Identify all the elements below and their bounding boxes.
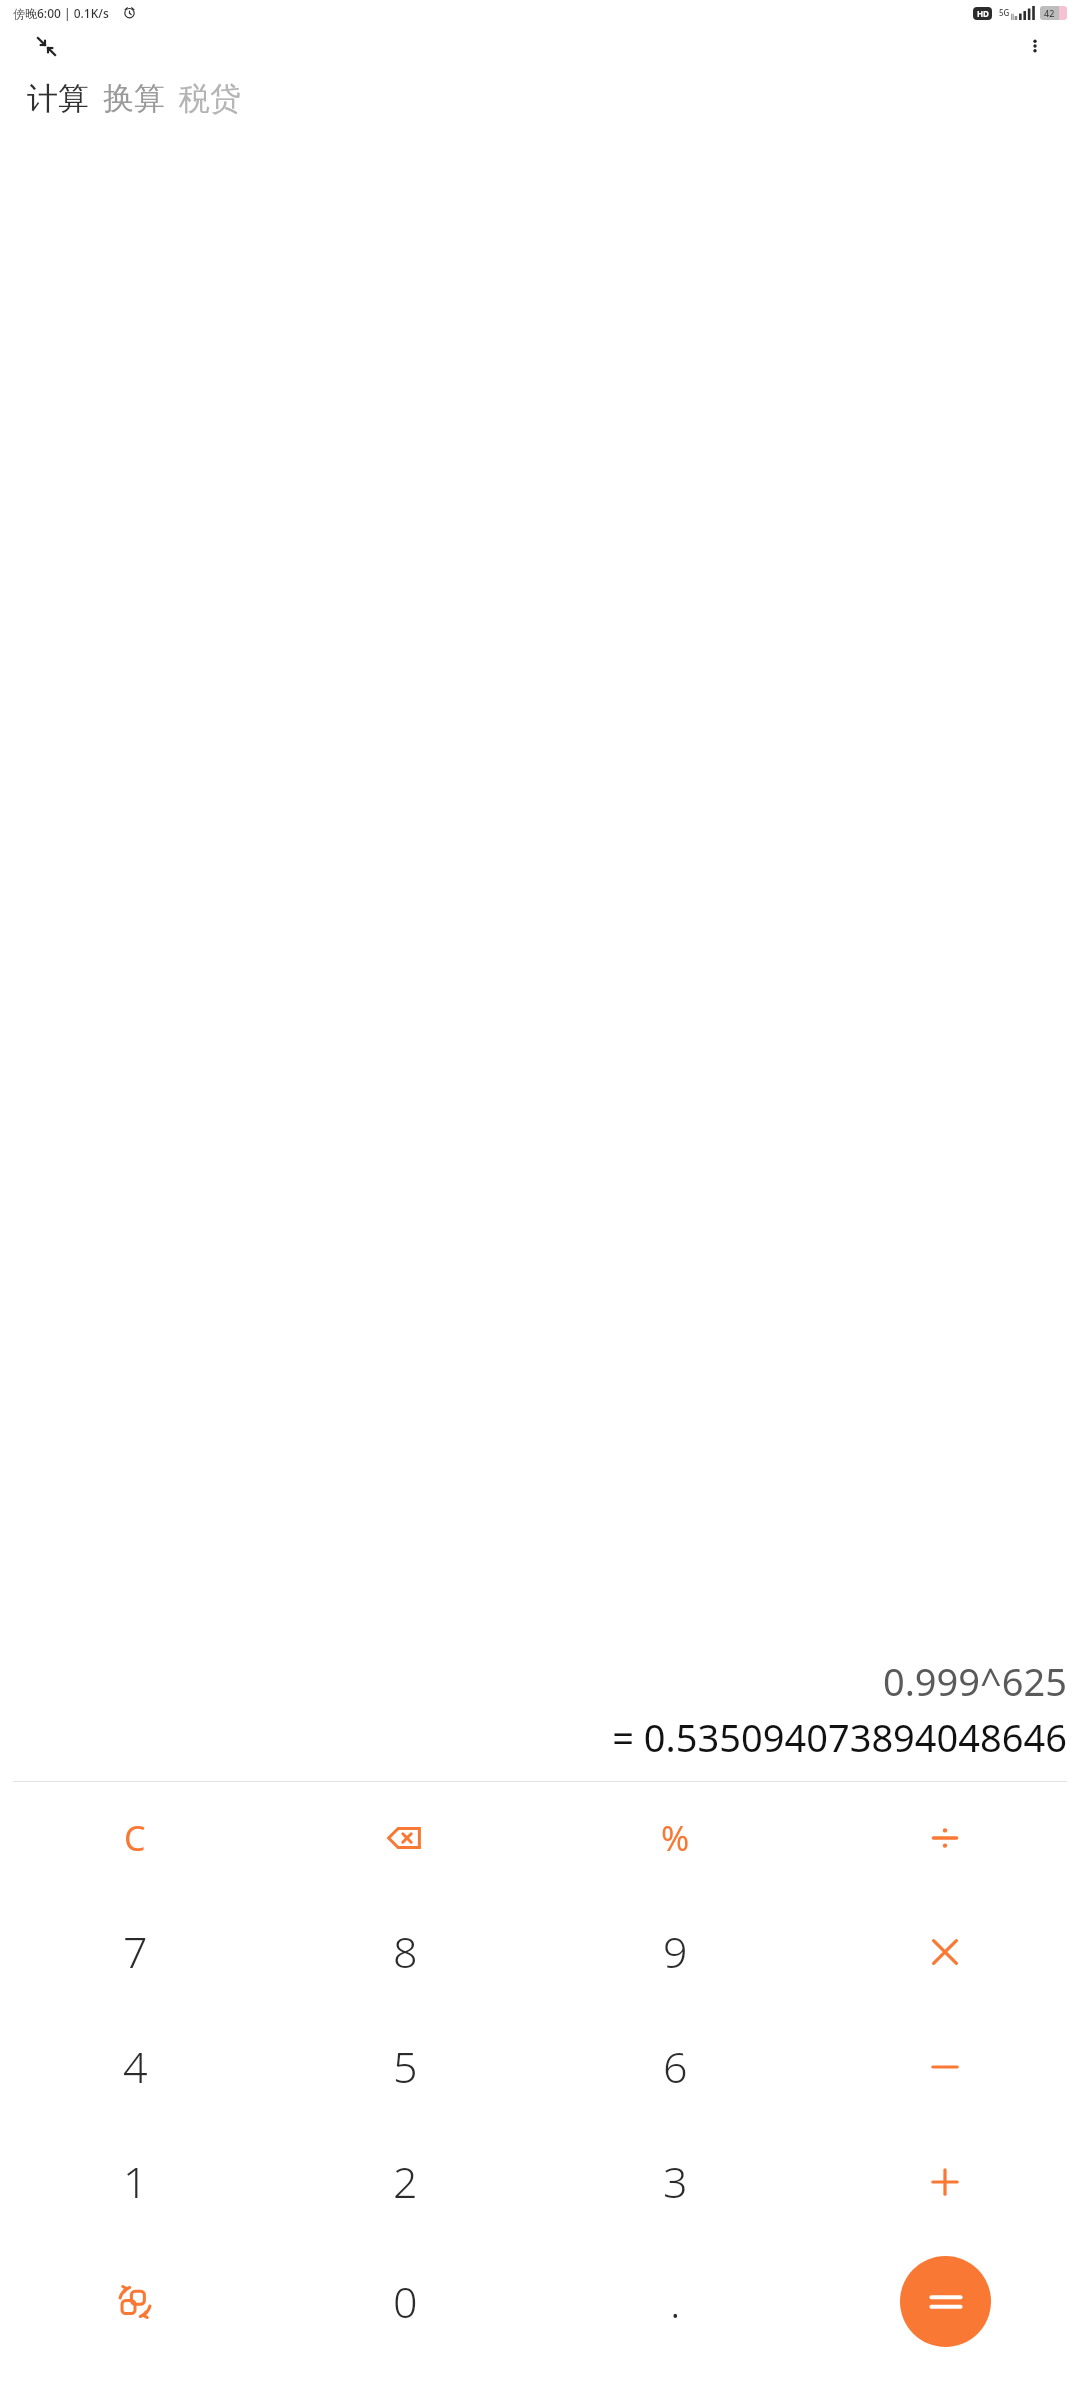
staticText: = 0.535094073894048646 — [612, 1711, 1067, 1763]
staticText: 7 — [123, 1922, 148, 1981]
button[interactable]: 1 — [0, 2124, 270, 2239]
staticText: 4 — [123, 2037, 148, 2096]
button[interactable]: 计算 — [27, 75, 89, 122]
staticText: 2 — [393, 2152, 418, 2211]
staticText: 6 — [663, 2037, 688, 2096]
staticText: % — [661, 1815, 690, 1861]
button[interactable]: Collapse — [26, 26, 66, 66]
button[interactable]: 7 — [0, 1894, 270, 2009]
button[interactable]: 6 — [540, 2009, 810, 2124]
staticText: 计算 — [27, 79, 89, 118]
button[interactable]: % — [540, 1782, 810, 1894]
staticText: HD — [977, 8, 989, 19]
staticText: C — [124, 1815, 146, 1861]
button[interactable]: Backspace — [270, 1782, 540, 1894]
staticText: 8 — [393, 1922, 418, 1981]
button[interactable]: 0 — [270, 2239, 540, 2364]
staticText: 换算 — [103, 79, 165, 118]
button[interactable]: Equals — [900, 2256, 991, 2347]
button[interactable]: Plus — [810, 2124, 1080, 2239]
staticText: 5G — [999, 7, 1010, 18]
staticText: 傍晚6:00 | 0.1K/s — [13, 5, 109, 21]
staticText: 42 — [1044, 7, 1055, 19]
staticText: 0.999^625 — [882, 1655, 1067, 1707]
button[interactable]: 2 — [270, 2124, 540, 2239]
button[interactable]: C — [0, 1782, 270, 1894]
button[interactable]: 3 — [540, 2124, 810, 2239]
staticText: 1 — [123, 2152, 148, 2211]
staticText: 3 — [663, 2152, 688, 2211]
button[interactable]: 4 — [0, 2009, 270, 2124]
button[interactable]: Divide — [810, 1782, 1080, 1894]
staticText: 9 — [663, 1922, 688, 1981]
button[interactable]: Minus — [810, 2009, 1080, 2124]
button[interactable]: 税贷 — [179, 75, 241, 122]
button[interactable]: 5 — [270, 2009, 540, 2124]
staticText: 5 — [393, 2037, 418, 2096]
button[interactable]: More options — [1015, 26, 1055, 66]
button[interactable]: Multiply — [810, 1894, 1080, 2009]
button[interactable]: . — [540, 2239, 810, 2364]
button[interactable]: 换算 — [103, 75, 165, 122]
button[interactable]: 9 — [540, 1894, 810, 2009]
staticText: . — [670, 2272, 681, 2331]
button[interactable]: 8 — [270, 1894, 540, 2009]
staticText: 0 — [393, 2272, 418, 2331]
button[interactable]: Convert — [0, 2239, 270, 2364]
staticText: 税贷 — [179, 79, 241, 118]
